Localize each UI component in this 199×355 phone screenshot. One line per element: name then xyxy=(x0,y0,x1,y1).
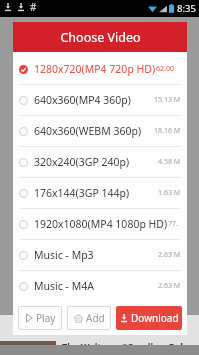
staticText: 18.16 M xyxy=(154,126,181,136)
staticText: 2.63 M xyxy=(158,250,181,260)
staticText: 1920x1080(MP4 1080p HD) xyxy=(34,217,168,231)
button[interactable]: Play xyxy=(18,306,62,330)
button[interactable]: 640x360(WEBM 360p) xyxy=(13,116,187,146)
staticText: 2.63 M xyxy=(158,281,181,291)
button[interactable]: 640x360(MP4 360p) xyxy=(13,85,187,115)
staticText: 8:35 xyxy=(177,2,196,15)
button[interactable]: 1920x1080(MP4 1080p HD) xyxy=(13,209,187,239)
staticText: 320x240(3GP 240p) xyxy=(34,155,130,169)
staticText: # xyxy=(30,0,37,14)
staticText: 1.63 M xyxy=(158,188,181,198)
button[interactable]: Music - Mp3 xyxy=(13,240,187,270)
staticText: 1280x720(MP4 720p HD) xyxy=(34,62,156,76)
staticText: Music - Mp3 xyxy=(34,248,94,262)
staticText: 15.13 M xyxy=(154,95,181,105)
button[interactable]: Add xyxy=(67,306,111,330)
staticText: The Walters - "Goodbye Baby xyxy=(62,340,191,352)
staticText: Music - M4A xyxy=(34,279,94,293)
button[interactable]: 320x240(3GP 240p) xyxy=(13,147,187,177)
button[interactable]: 176x144(3GP 144p) xyxy=(13,178,187,208)
button[interactable]: Music - M4A xyxy=(13,271,187,301)
staticText: Choose Video xyxy=(60,29,141,46)
staticText: 640x360(WEBM 360p) xyxy=(34,124,142,138)
button[interactable]: 1280x720(MP4 720p HD) xyxy=(13,54,187,84)
staticText: 77.11 M xyxy=(168,219,181,229)
staticText: 4.58 M xyxy=(158,157,181,167)
staticText: 176x144(3GP 144p) xyxy=(34,186,130,200)
staticText: Play xyxy=(36,311,56,325)
staticText: 62.00 M xyxy=(156,64,181,74)
button[interactable]: Download xyxy=(116,306,182,330)
staticText: 640x360(MP4 360p) xyxy=(34,93,131,107)
staticText: Add xyxy=(86,311,105,325)
staticText: Download xyxy=(131,311,179,325)
